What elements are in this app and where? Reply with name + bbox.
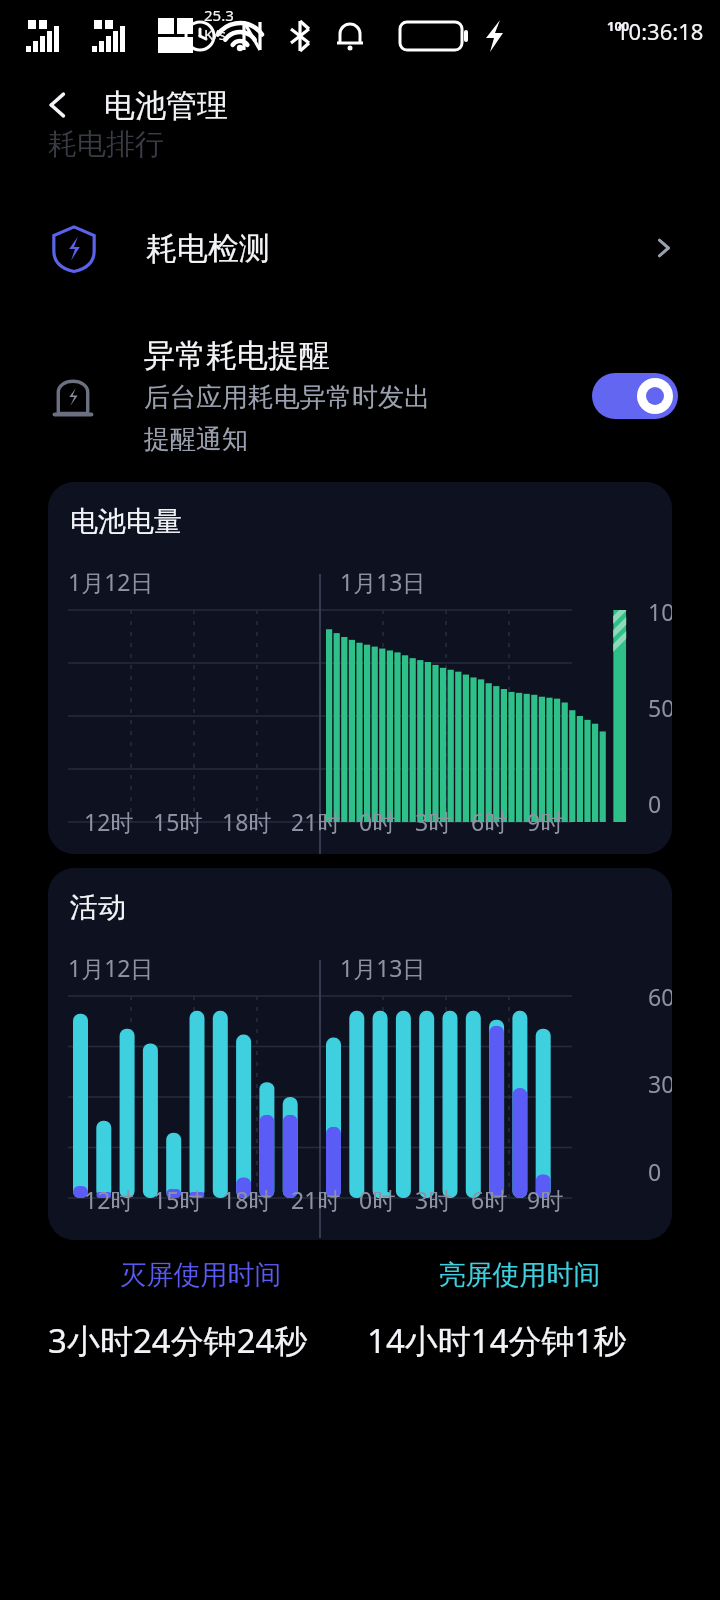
staticText: 21时 <box>291 806 341 837</box>
staticText: 3时 <box>415 806 452 837</box>
staticText: 1月13日 <box>340 566 426 597</box>
staticText: 12时 <box>84 806 134 837</box>
button[interactable]: 返回 <box>30 77 86 133</box>
staticText: 50 <box>648 692 672 723</box>
staticText: 电池管理 <box>104 86 228 125</box>
button[interactable]: 活动 <box>48 868 672 1240</box>
staticText: 0 <box>648 788 662 819</box>
staticText: 异常耗电提醒 <box>144 336 330 375</box>
staticText: 60 <box>648 981 672 1012</box>
staticText: 6时 <box>471 806 508 837</box>
staticText: 14小时14分钟1秒 <box>367 1318 627 1363</box>
staticText: K/s <box>204 24 227 44</box>
staticText: 9时 <box>527 1184 564 1215</box>
staticText: 1月12日 <box>68 952 154 983</box>
staticText: 3小时24分钟24秒 <box>48 1318 308 1363</box>
staticText: 15时 <box>153 1184 203 1215</box>
staticText: 10:36:18 <box>616 16 704 46</box>
staticText: 100 <box>648 596 672 627</box>
staticText: 3时 <box>415 1184 452 1215</box>
staticText: 25.3 <box>204 5 234 25</box>
staticText: 耗电排行 <box>48 126 164 160</box>
staticText: 1月12日 <box>68 566 154 597</box>
button[interactable]: 异常耗电提醒 <box>0 332 720 460</box>
button[interactable]: 亮屏使用时间 <box>367 1258 672 1292</box>
staticText: 后台应用耗电异常时发出 提醒通知 <box>144 381 430 456</box>
staticText: 耗电检测 <box>146 229 270 268</box>
button[interactable]: 耗电检测 <box>0 200 720 296</box>
staticText: 0 <box>648 1156 662 1187</box>
staticText: 15时 <box>153 806 203 837</box>
staticText: 0时 <box>359 806 396 837</box>
staticText: 活动 <box>70 890 126 925</box>
staticText: 1月13日 <box>340 952 426 983</box>
button[interactable]: 异常耗电提醒开关 <box>592 373 678 419</box>
staticText: 30 <box>648 1068 672 1099</box>
staticText: 21时 <box>291 1184 341 1215</box>
staticText: 9时 <box>527 806 564 837</box>
staticText: 100 <box>607 17 630 35</box>
staticText: 0时 <box>359 1184 396 1215</box>
staticText: 12时 <box>84 1184 134 1215</box>
staticText: 6时 <box>471 1184 508 1215</box>
staticText: 18时 <box>222 806 272 837</box>
button[interactable]: 电池电量 <box>48 482 672 854</box>
staticText: 电池电量 <box>70 504 182 539</box>
staticText: 18时 <box>222 1184 272 1215</box>
button[interactable]: 灭屏使用时间 <box>48 1258 353 1292</box>
